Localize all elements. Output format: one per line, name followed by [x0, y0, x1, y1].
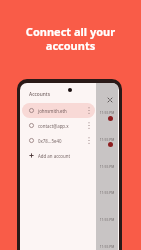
staticText: 11:55 PM	[96, 110, 118, 115]
staticText: 11:55 PM	[96, 164, 118, 169]
button[interactable]: johnsmith.eth	[22, 103, 95, 118]
staticText: 11:55 PM	[96, 190, 118, 195]
button[interactable]: More options	[87, 122, 91, 129]
staticText: 11:55 PM	[96, 137, 118, 142]
staticText: Accounts	[29, 91, 50, 98]
staticText: Add an account	[38, 153, 71, 159]
button[interactable]: Collapse	[107, 97, 113, 103]
button[interactable]: More options	[87, 107, 91, 114]
staticText: 11:55 PM	[96, 244, 118, 249]
button[interactable]: contact@app.x	[22, 118, 95, 133]
staticText: 11:55 PM	[96, 217, 118, 222]
staticText: Connect all your accounts	[0, 24, 141, 54]
button[interactable]: More options	[87, 137, 91, 144]
staticText: johnsmith.eth	[38, 108, 67, 114]
button[interactable]: 0x78...5e40	[22, 133, 95, 148]
staticText: contact@app.x	[38, 123, 69, 129]
staticText: 0x78...5e40	[38, 138, 62, 144]
button[interactable]: Add an account	[20, 148, 96, 163]
